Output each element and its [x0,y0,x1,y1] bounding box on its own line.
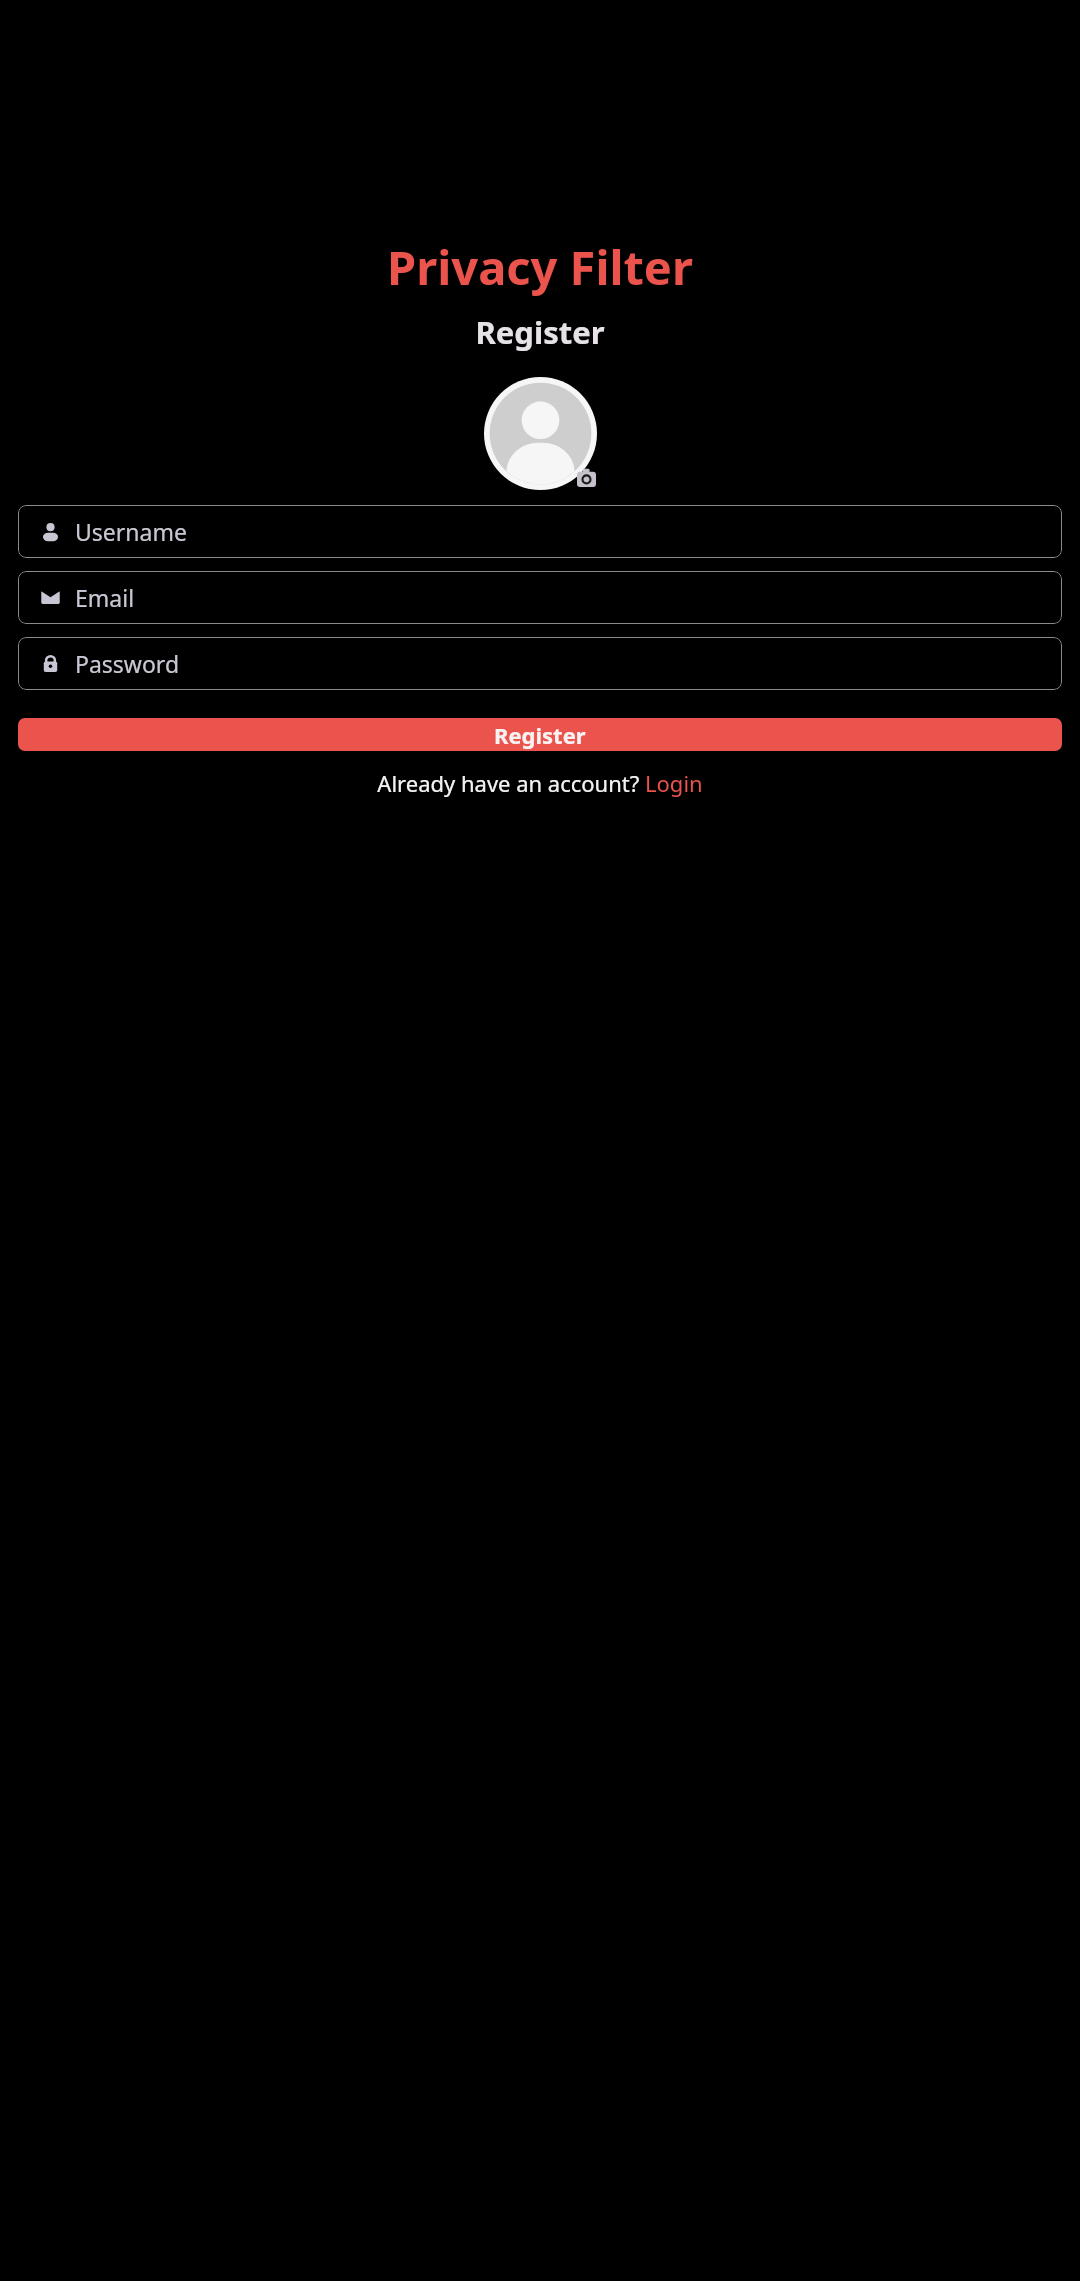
staticText: Privacy Filter [387,235,693,299]
staticText: Register [494,720,586,750]
button[interactable]: Already have an account? Login [367,765,713,801]
staticText: Already have an account? Login [377,768,703,798]
button[interactable]: Password [18,637,1062,690]
staticText: Username [75,516,187,547]
button[interactable]: Take photo [577,468,596,487]
staticText: Email [75,582,135,613]
button[interactable]: Register [18,718,1062,751]
button[interactable]: Email [18,571,1062,624]
staticText: Password [75,648,180,679]
button[interactable]: Username [18,505,1062,558]
staticText: Register [475,311,605,353]
button[interactable]: Change profile photo [484,377,597,490]
